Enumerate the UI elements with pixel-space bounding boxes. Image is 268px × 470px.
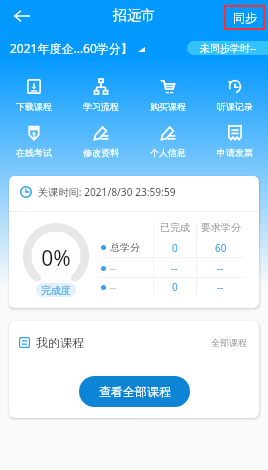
staticText: 0	[172, 280, 178, 294]
button[interactable]: 未同步学时--	[187, 41, 268, 55]
button[interactable]: 全部课程	[207, 332, 251, 353]
staticText: 2021年度企...60学分】	[10, 40, 133, 56]
staticText: 修改资料	[83, 147, 119, 158]
button[interactable]: 查看全部课程	[79, 376, 190, 407]
staticText: --	[110, 261, 117, 275]
staticText: 完成度	[41, 284, 71, 297]
button[interactable]: 学习流程	[67, 71, 134, 117]
staticText: 我的课程	[36, 335, 84, 350]
button[interactable]: 在线考试	[0, 117, 67, 163]
staticText: 学习流程	[83, 101, 119, 112]
staticText: 全部课程	[211, 337, 247, 348]
staticText: 60	[215, 241, 227, 255]
staticText: --	[110, 280, 117, 294]
staticText: --	[217, 280, 224, 294]
staticText: 总学分	[110, 241, 140, 254]
staticText: 在线考试	[16, 147, 52, 158]
staticText: 0%	[9, 244, 103, 273]
staticText: --	[217, 261, 224, 275]
staticText: 招远市	[113, 7, 155, 25]
staticText: 已完成	[160, 221, 190, 234]
staticText: 要求学分	[201, 221, 241, 234]
staticText: 0	[172, 241, 178, 255]
button[interactable]: 下载课程	[0, 71, 67, 117]
staticText: --	[171, 261, 178, 275]
staticText: 申请发票	[217, 147, 253, 158]
staticText: 查看全部课程	[99, 384, 171, 399]
staticText: 下载课程	[16, 101, 52, 112]
button[interactable]: 同步	[224, 5, 265, 30]
button[interactable]: 购买课程	[134, 71, 201, 117]
staticText: 同步	[233, 10, 257, 25]
staticText: 购买课程	[150, 101, 186, 112]
staticText: 听课记录	[217, 101, 253, 112]
staticText: 未同步学时--	[200, 41, 257, 55]
staticText: 个人信息	[150, 147, 186, 158]
button[interactable]: 个人信息	[134, 117, 201, 163]
button[interactable]: Back	[0, 0, 44, 31]
button[interactable]: 听课记录	[201, 71, 268, 117]
button[interactable]: 申请发票	[201, 117, 268, 163]
button[interactable]: 修改资料	[67, 117, 134, 163]
staticText: 关课时间: 2021/8/30 23:59:59	[38, 185, 176, 199]
